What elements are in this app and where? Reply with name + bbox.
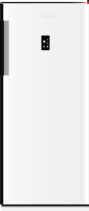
staticText: beko bbox=[42, 13, 55, 20]
button[interactable]: Beko upright freezer product photo bbox=[0, 0, 89, 211]
